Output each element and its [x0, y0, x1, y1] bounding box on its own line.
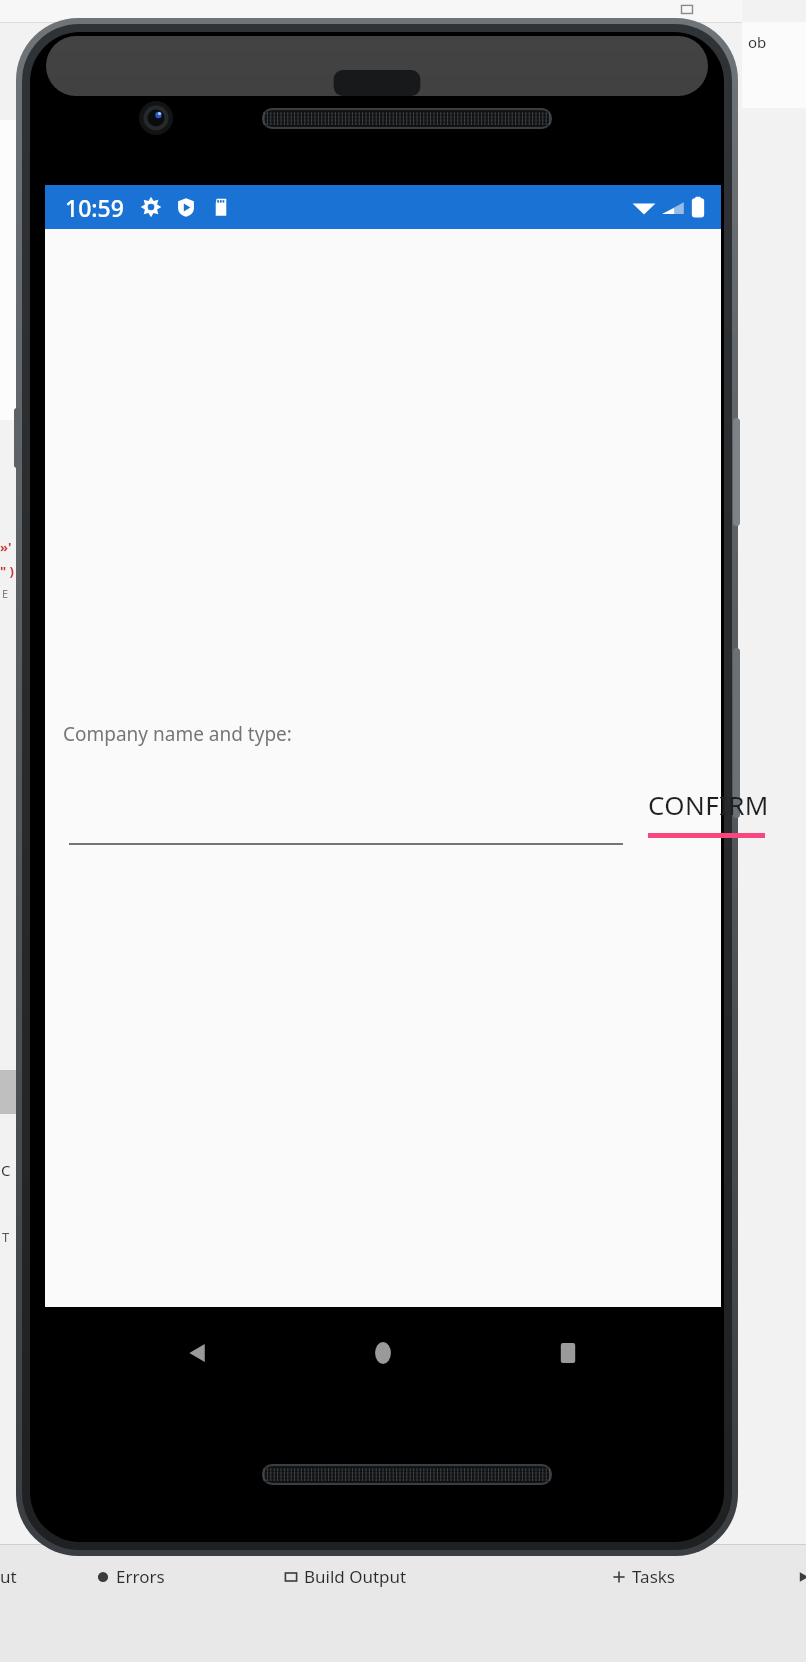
button[interactable]: Tool Output: [795, 1565, 806, 1588]
staticText: Build Output: [304, 1565, 407, 1588]
button[interactable]: Back: [166, 1321, 230, 1385]
staticText: »': [0, 538, 12, 556]
button[interactable]: Build Output: [283, 1565, 407, 1588]
button[interactable]: ut: [0, 1565, 17, 1588]
button[interactable]: [69, 769, 623, 845]
staticText: C: [1, 1160, 11, 1180]
staticText: Errors: [116, 1565, 165, 1588]
staticText: Tasks: [632, 1565, 675, 1588]
staticText: Company name and type:: [63, 721, 292, 747]
button[interactable]: Recent apps: [536, 1321, 600, 1385]
button[interactable]: Errors: [95, 1565, 165, 1588]
button[interactable]: Tasks: [611, 1565, 675, 1588]
staticText: E: [2, 586, 9, 601]
staticText: ut: [0, 1565, 17, 1588]
button[interactable]: CONFIRM: [645, 785, 765, 845]
staticText: ob: [748, 32, 767, 52]
staticText: CONFIRM: [648, 787, 768, 822]
staticText: T: [2, 1228, 10, 1246]
button[interactable]: Home: [351, 1321, 415, 1385]
staticText: 10:59: [65, 192, 124, 223]
staticText: " ): [0, 562, 15, 580]
